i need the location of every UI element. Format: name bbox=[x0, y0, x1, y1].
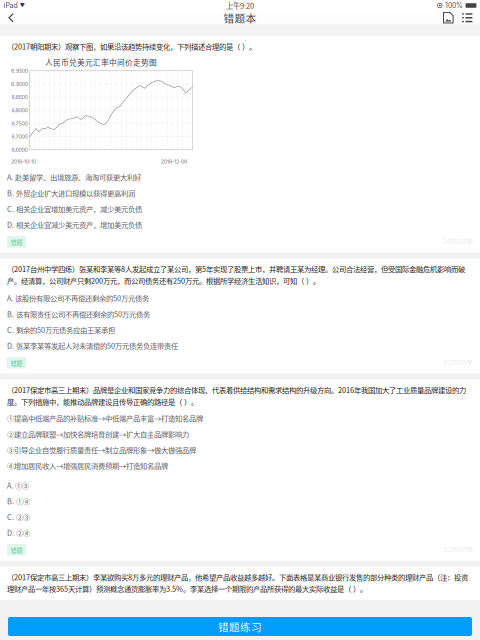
staticText: B. ①④ bbox=[7, 496, 30, 506]
staticText: 100% bbox=[445, 1, 463, 10]
staticText: C. 相关企业宜增加美元资产，减少美元负债 bbox=[7, 203, 142, 214]
staticText: ②建立品牌联盟→加快名牌培育创建→扩大自主品牌影响力 bbox=[7, 429, 189, 439]
staticText: 错题练习 bbox=[218, 619, 262, 634]
staticText: ④增加居民收入→增强居民消费预期→打造知名品牌 bbox=[7, 460, 168, 471]
staticText: （2017保定市高三上期末）李某欲购买8万多元的理财产品，他希望产品收益越多越好… bbox=[7, 572, 468, 594]
staticText: iPad bbox=[3, 1, 17, 10]
staticText: 6.6000 bbox=[11, 147, 27, 153]
staticText: A. ①③ bbox=[7, 480, 29, 490]
staticText: ①提高中低端产品的补贴标准→中低端产品丰富→打造知名品牌 bbox=[7, 413, 203, 423]
staticText: A. 赴美留学、出境旅游、海淘可获更大利好 bbox=[7, 172, 141, 182]
staticText: C. 剩余的50万元债务应由王某承担 bbox=[7, 324, 115, 335]
staticText: （2017台州中学四练）张某和李某等8人发起成立了某公司，第5年实现了股票上市，… bbox=[7, 264, 465, 286]
button[interactable]: More bbox=[458, 11, 477, 25]
staticText: 6.8000 bbox=[11, 107, 27, 114]
staticText: 6.9500 bbox=[11, 68, 28, 74]
staticText: 2016-12-09 bbox=[161, 158, 187, 165]
staticText: B. 该有限责任公司不再偿还剩余的50万元债务 bbox=[7, 309, 150, 319]
staticText: 6.9000 bbox=[11, 81, 28, 87]
staticText: 2017/07/18 bbox=[443, 359, 473, 366]
staticText: C. ②③ bbox=[7, 511, 30, 522]
staticText: 错题 bbox=[11, 237, 23, 246]
staticText: 错题本 bbox=[223, 10, 256, 25]
button[interactable]: Export bbox=[439, 11, 458, 25]
staticText: 6.7500 bbox=[11, 120, 27, 127]
staticText: 2016-10-10 bbox=[11, 158, 36, 165]
staticText: 2017/07/18 bbox=[443, 546, 473, 553]
staticText: 2017/07/18 bbox=[443, 238, 473, 245]
staticText: B. 外贸企业扩大进口规模以获得更高利润 bbox=[7, 188, 135, 198]
staticText: A. 该股份有限公司不再偿还剩余的50万元债务 bbox=[7, 293, 149, 303]
staticText: （2017朝阳期末）观察下图，如果沿该趋势持续变化，下列描述合理的是（ ）。 bbox=[7, 41, 256, 52]
staticText: D. ②④ bbox=[7, 527, 30, 538]
staticText: ③引导企业自觉履行质量责任→制立品牌形象→做大做强品牌 bbox=[7, 444, 196, 455]
staticText: D. 张某李某等发起人对未清偿的50万元债务负连带责任 bbox=[7, 340, 178, 351]
staticText: 6.7000 bbox=[11, 133, 27, 140]
staticText: 6.8500 bbox=[11, 94, 27, 100]
button[interactable]: Back bbox=[3, 11, 19, 25]
button[interactable]: 错题练习 bbox=[8, 617, 472, 636]
staticText: D. 相关企业宜减少美元资产，增加美元负债 bbox=[7, 219, 142, 230]
staticText: 错题 bbox=[11, 358, 23, 367]
staticText: 人民币兑美元汇率中间价走势图 bbox=[45, 57, 157, 68]
staticText: （2017保定市高三上期末）品牌是企业和国家竞争力的综合体现、代表着供给结构和需… bbox=[7, 385, 466, 407]
staticText: 错题 bbox=[11, 545, 23, 554]
staticText: 上午9:20 bbox=[226, 0, 254, 11]
